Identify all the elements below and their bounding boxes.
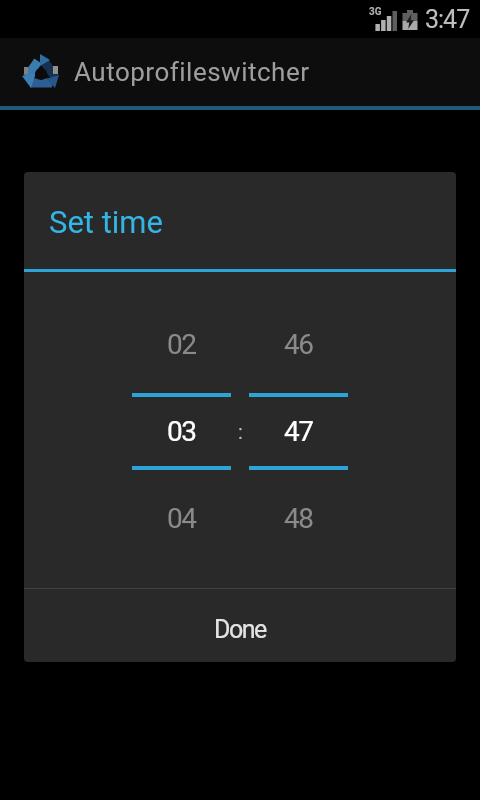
staticText: Done [214,615,266,644]
staticText: 03 [167,415,196,448]
staticText: 47 [284,415,313,448]
button[interactable]: Autoprofileswitcher [0,38,310,106]
staticText: : [238,420,243,443]
button[interactable]: Done [24,589,456,662]
staticText: 04 [167,502,196,535]
button[interactable]: 03 [132,397,231,466]
staticText: 48 [284,502,313,535]
staticText: Set time [49,204,163,240]
staticText: 3:47 [425,5,470,34]
button[interactable]: 47 [249,397,348,466]
staticText: 46 [284,328,313,361]
staticText: 02 [167,328,196,361]
staticText: 3G [369,6,382,18]
staticText: Autoprofileswitcher [74,57,310,87]
